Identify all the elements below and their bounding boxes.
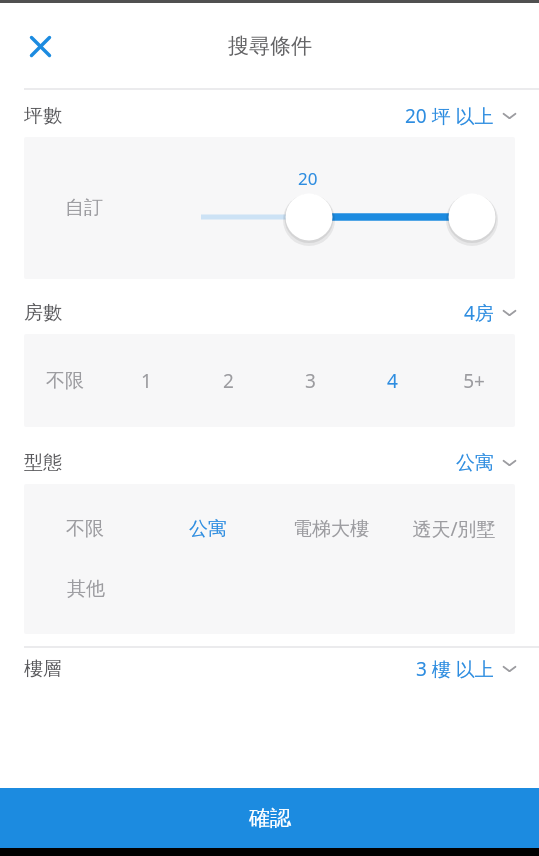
button[interactable]: 4 — [351, 357, 433, 405]
staticText: 型態 — [24, 451, 62, 475]
staticText: 5+ — [463, 368, 485, 394]
staticText: 坪數 — [24, 104, 62, 128]
staticText: 3 — [305, 368, 316, 394]
button[interactable]: 其他 — [24, 565, 147, 613]
staticText: 2 — [223, 368, 234, 394]
button[interactable]: 確認 — [0, 788, 539, 848]
button[interactable]: 房數 — [0, 292, 539, 333]
button[interactable]: Size range slider — [24, 137, 515, 279]
staticText: 4 — [387, 368, 398, 394]
staticText: 透天/別墅 — [412, 516, 496, 542]
button[interactable]: 不限 — [24, 505, 146, 553]
staticText: 20 — [298, 167, 318, 190]
button[interactable]: 透天/別墅 — [392, 505, 515, 553]
button[interactable]: 3 — [269, 357, 351, 405]
staticText: 確認 — [249, 805, 291, 831]
button[interactable]: 型態 — [0, 442, 539, 483]
staticText: 公寓 — [189, 517, 227, 541]
staticText: 不限 — [66, 517, 104, 541]
staticText: 3 樓 以上 — [416, 656, 494, 682]
button[interactable]: 坪數 — [0, 95, 539, 136]
button[interactable]: 電梯大樓 — [269, 505, 392, 553]
staticText: 1 — [141, 368, 152, 394]
button[interactable]: 公寓 — [146, 505, 269, 553]
staticText: 搜尋條件 — [228, 33, 312, 59]
button[interactable]: 1 — [105, 357, 187, 405]
staticText: 自訂 — [65, 196, 103, 220]
button[interactable]: 2 — [187, 357, 269, 405]
button[interactable]: 不限 — [24, 357, 105, 405]
staticText: 樓層 — [24, 657, 62, 681]
staticText: 電梯大樓 — [293, 517, 369, 541]
button[interactable]: Close — [19, 25, 61, 67]
staticText: 20 坪 以上 — [405, 103, 494, 129]
button[interactable]: 5+ — [433, 357, 515, 405]
staticText: 其他 — [67, 577, 105, 601]
button[interactable]: 樓層 — [0, 648, 539, 689]
staticText: 房數 — [24, 301, 62, 325]
staticText: 4房 — [464, 300, 494, 326]
staticText: 不限 — [46, 369, 84, 393]
staticText: 公寓 — [456, 451, 494, 475]
